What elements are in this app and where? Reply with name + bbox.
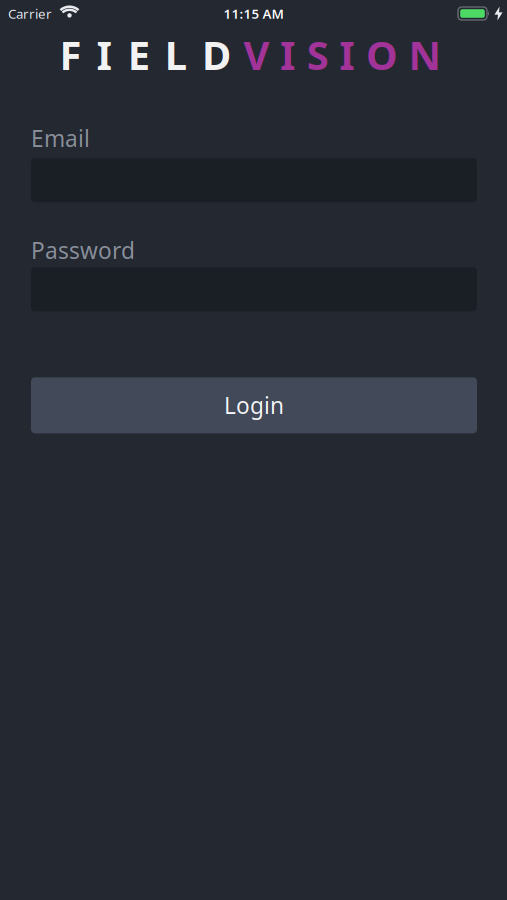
- staticText: VISION: [243, 28, 441, 81]
- staticText: Login: [224, 390, 284, 420]
- staticText: Email: [31, 123, 90, 153]
- staticText: 11:15 AM: [223, 5, 283, 22]
- staticText: Carrier: [8, 5, 52, 22]
- button[interactable]: Login: [31, 377, 477, 433]
- staticText: Password: [31, 235, 135, 265]
- staticText: FIELD: [59, 28, 231, 81]
